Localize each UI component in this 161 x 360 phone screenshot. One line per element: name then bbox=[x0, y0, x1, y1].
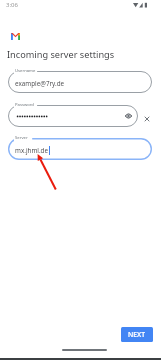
button[interactable]: Server bbox=[8, 138, 152, 160]
staticText: mx.jhml.de bbox=[15, 146, 49, 155]
button[interactable]: Username bbox=[8, 71, 152, 93]
staticText: NEXT bbox=[128, 330, 146, 339]
button[interactable]: NEXT bbox=[121, 327, 153, 342]
staticText: 3:06 bbox=[6, 1, 18, 9]
staticText: Incoming server settings bbox=[7, 48, 115, 61]
staticText: example@7ry.de bbox=[15, 79, 65, 88]
button[interactable]: Clear text bbox=[144, 116, 150, 122]
button[interactable]: Show password bbox=[125, 113, 132, 119]
button[interactable]: Password bbox=[8, 105, 138, 127]
staticText: Username bbox=[15, 68, 36, 74]
staticText: Password bbox=[15, 102, 34, 108]
staticText: Server bbox=[15, 135, 28, 141]
